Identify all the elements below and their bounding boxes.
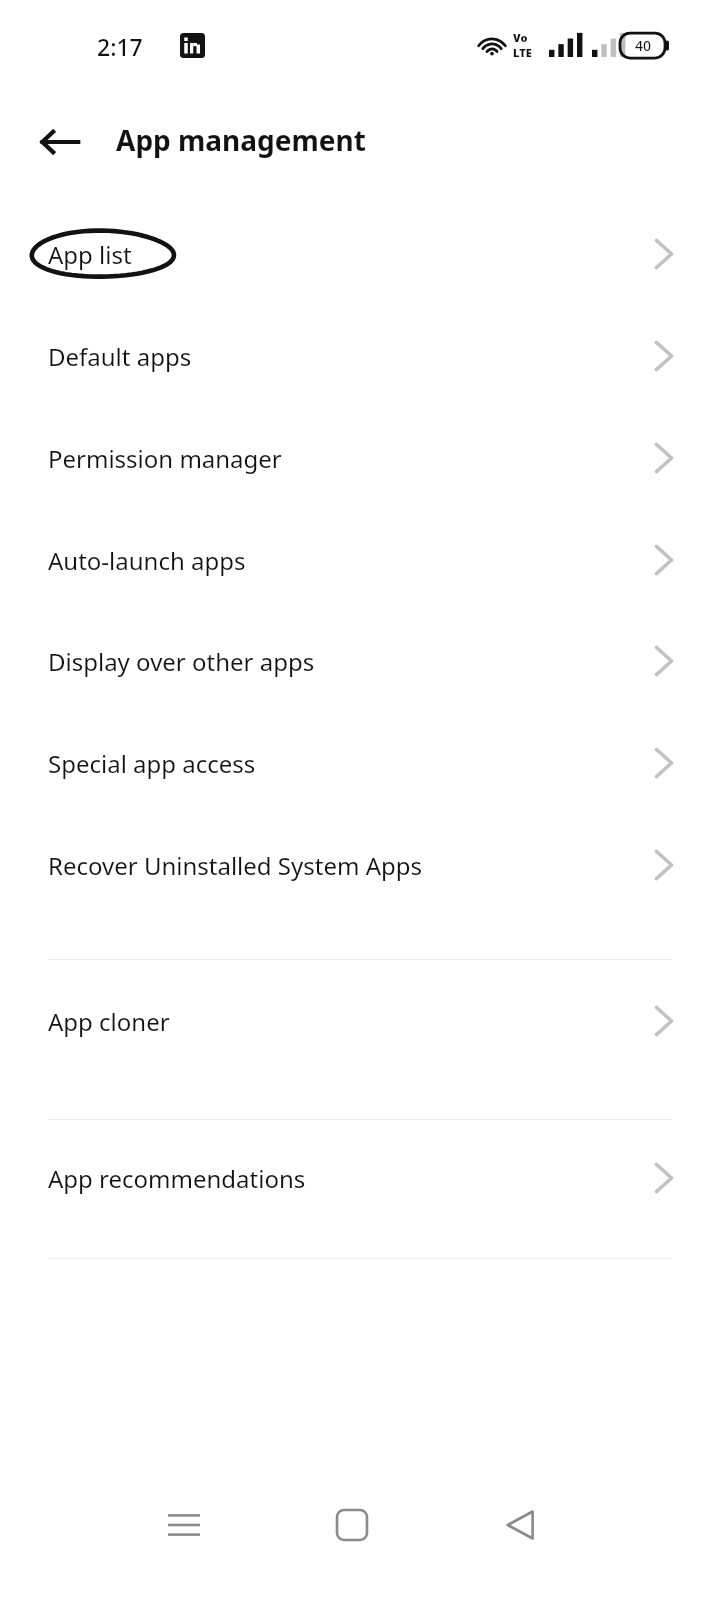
staticText: LTE — [513, 45, 532, 60]
staticText: Permission manager — [48, 442, 282, 475]
staticText: Vo — [513, 30, 528, 45]
staticText: Default apps — [48, 340, 192, 373]
button[interactable]: App list — [0, 206, 720, 302]
button[interactable]: Default apps — [0, 308, 720, 404]
staticText: Display over other apps — [48, 645, 315, 678]
button[interactable]: Special app access — [0, 715, 720, 811]
button[interactable]: Permission manager — [0, 410, 720, 506]
staticText: 40 — [635, 36, 652, 55]
button[interactable]: App cloner — [0, 973, 720, 1069]
staticText: App cloner — [48, 1005, 170, 1038]
staticText: App management — [116, 121, 366, 159]
button[interactable]: Back — [24, 106, 96, 178]
button[interactable]: Display over other apps — [0, 613, 720, 709]
button[interactable]: App recommendations — [0, 1130, 720, 1226]
button[interactable]: Back — [484, 1489, 556, 1561]
staticText: Special app access — [48, 747, 256, 780]
staticText: App recommendations — [48, 1162, 306, 1195]
button[interactable]: Recent apps — [148, 1489, 220, 1561]
button[interactable]: Auto-launch apps — [0, 512, 720, 608]
button[interactable]: Home — [316, 1489, 388, 1561]
button[interactable]: Recover Uninstalled System Apps — [0, 817, 720, 913]
staticText: Recover Uninstalled System Apps — [48, 849, 422, 882]
staticText: 2:17 — [97, 31, 143, 62]
staticText: App list — [48, 238, 132, 271]
staticText: Auto-launch apps — [48, 544, 246, 577]
